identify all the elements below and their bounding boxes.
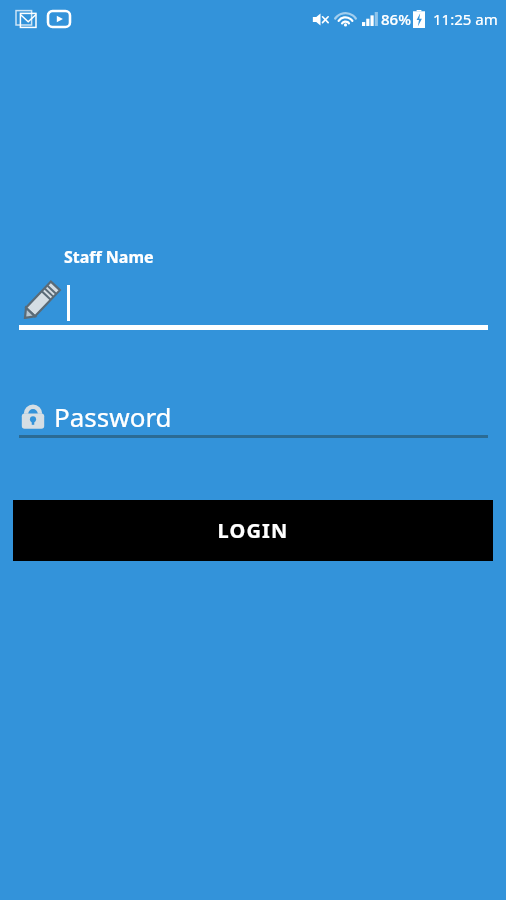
button[interactable]: [13, 275, 493, 331]
staticText: LOGIN: [217, 517, 289, 544]
button[interactable]: LOGIN: [13, 500, 493, 561]
staticText: 86%: [381, 9, 411, 29]
staticText: Password: [54, 399, 172, 434]
button[interactable]: Password: [19, 394, 488, 438]
staticText: 11:25 am: [433, 9, 498, 29]
staticText: Staff Name: [64, 246, 154, 268]
